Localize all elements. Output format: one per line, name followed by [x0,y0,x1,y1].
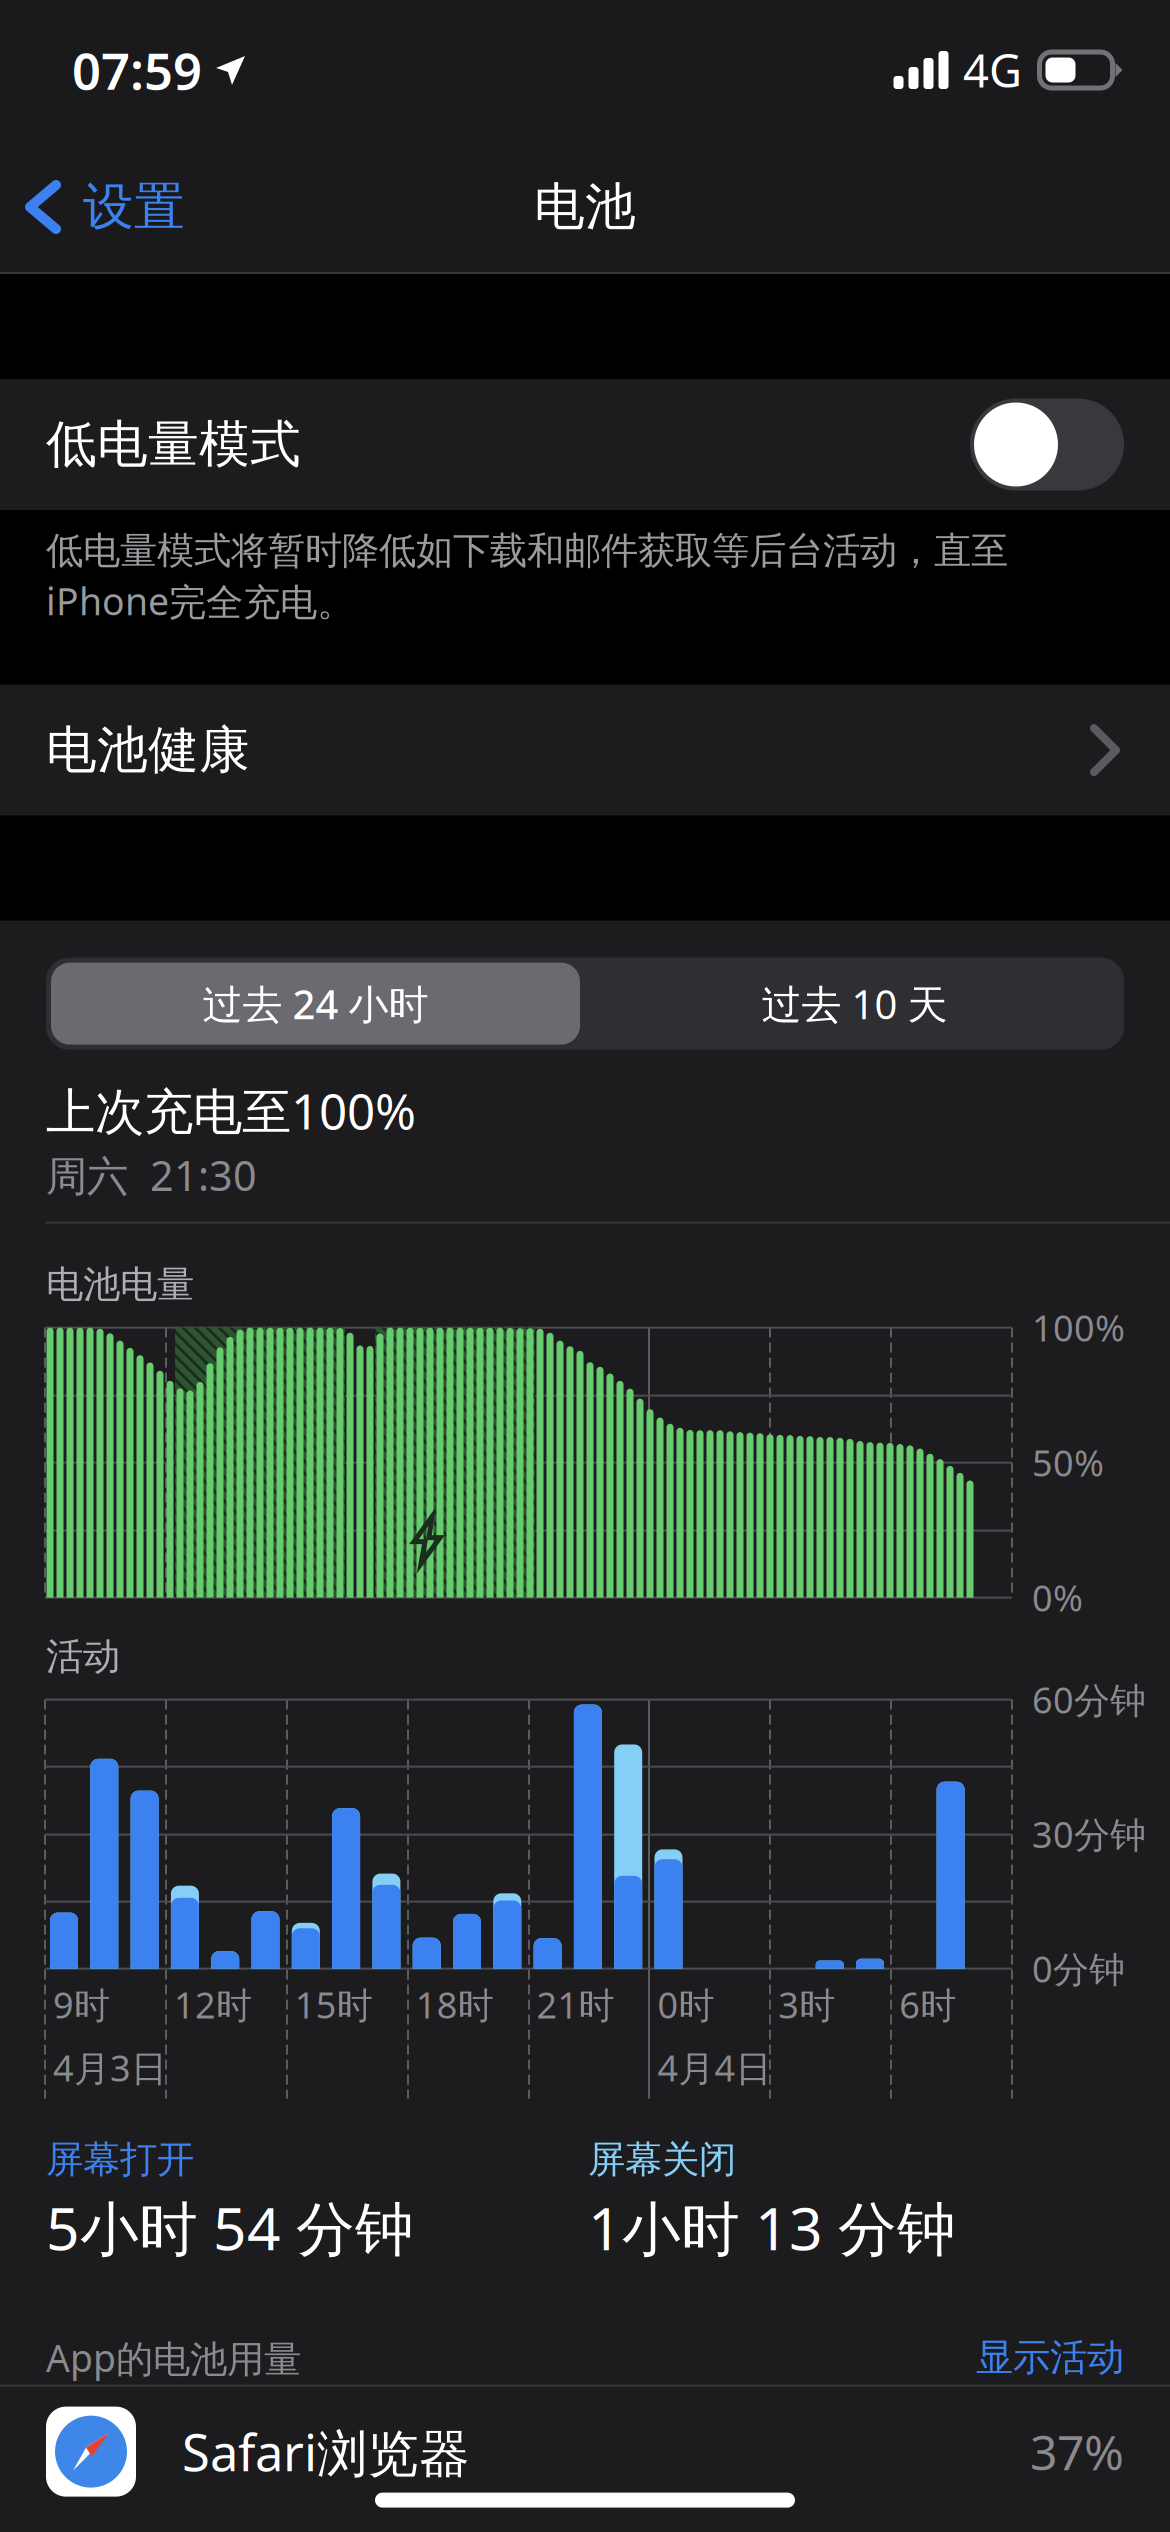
staticText: 电池 [534,176,636,238]
staticText: 低电量模式 [46,413,301,476]
staticText: 3时 [778,1981,835,2028]
button[interactable]: 过去 24 小时 [46,958,585,1050]
button[interactable]: 过去 10 天 [585,958,1124,1050]
staticText: 07:59 [72,36,202,104]
staticText: 12时 [174,1981,252,2028]
staticText: 上次充电至100% [46,1078,416,1143]
staticText: iPhone完全充电。 [46,576,354,626]
staticText: 5小时 54 分钟 [46,2189,414,2266]
button[interactable]: Safari浏览器 [0,2387,1170,2517]
staticText: 30分钟 [1032,1810,1146,1858]
button[interactable]: 显示活动 [976,2335,1124,2380]
staticText: 屏幕关闭 [588,2137,736,2182]
button[interactable]: 设置 [0,160,185,254]
staticText: 低电量模式将暂时降低如下载和邮件获取等后台活动，直至 [46,528,1008,574]
staticText: 21时 [536,1981,614,2028]
staticText: 过去 24 小时 [202,977,428,1030]
staticText: 9时 [53,1981,110,2028]
staticText: 6时 [899,1981,956,2028]
staticText: 15时 [295,1981,373,2028]
staticText: 37% [1030,2420,1124,2483]
staticText: 50% [1032,1439,1104,1486]
staticText: 显示活动 [976,2335,1124,2380]
staticText: 4月3日 [53,2044,167,2091]
staticText: 0% [1032,1574,1083,1621]
staticText: 18时 [416,1981,494,2028]
staticText: 电池健康 [46,719,250,781]
staticText: 过去 10 天 [761,977,947,1030]
staticText: 0时 [657,1981,714,2028]
button[interactable]: 电池健康 [0,685,1170,816]
staticText: 周六 21:30 [46,1148,257,1202]
staticText: 4G [963,40,1022,100]
staticText: 电池电量 [46,1262,194,1307]
staticText: Safari浏览器 [182,2418,470,2485]
staticText: 4月4日 [657,2044,771,2091]
button[interactable]: 低电量模式 [970,398,1124,490]
staticText: 活动 [46,1634,120,1679]
staticText: 100% [1032,1304,1125,1351]
staticText: 1小时 13 分钟 [588,2189,956,2266]
staticText: 60分钟 [1032,1676,1146,1723]
staticText: 0分钟 [1032,1945,1125,1992]
staticText: App的电池用量 [46,2333,301,2382]
staticText: 设置 [83,176,185,238]
staticText: 屏幕打开 [46,2137,194,2182]
